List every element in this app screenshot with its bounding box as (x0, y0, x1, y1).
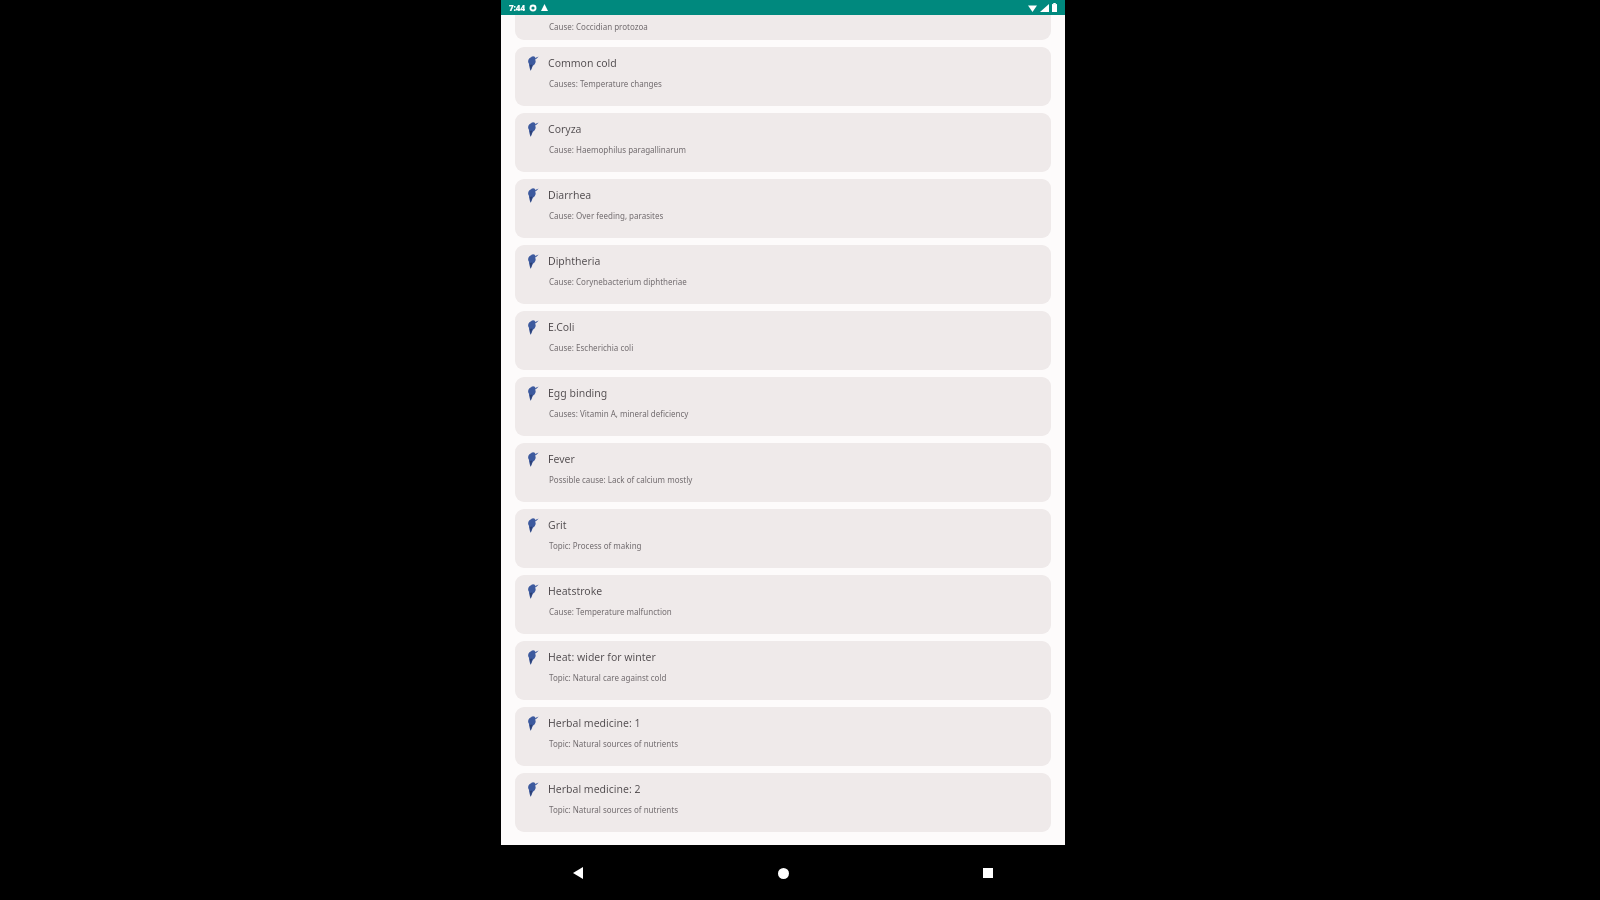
staticText: Causes: Vitamin A, mineral deficiency (549, 408, 689, 419)
staticText: Herbal medicine: 2 (548, 782, 641, 796)
button[interactable]: Bird (515, 575, 1051, 634)
other: Bird (525, 55, 539, 71)
staticText: Cause: Corynebacterium diphtheriae (549, 276, 687, 287)
staticText: Possible cause: Lack of calcium mostly (549, 474, 693, 485)
button[interactable]: Bird (515, 773, 1051, 832)
staticText: Cause: Escherichia coli (549, 342, 634, 353)
button[interactable]: Bird (515, 47, 1051, 106)
staticText: E.Coli (548, 320, 575, 334)
staticText: Cause: Haemophilus paragallinarum (549, 144, 686, 155)
other: Bird (525, 781, 539, 797)
staticText: Topic: Natural care against cold (549, 672, 667, 683)
staticText: Grit (548, 518, 567, 532)
staticText: Topic: Natural sources of nutrients (549, 804, 678, 815)
staticText: Heatstroke (548, 584, 603, 598)
other: Bird (525, 319, 539, 335)
staticText: Cause: Coccidian protozoa (549, 21, 648, 32)
other: Bird (525, 121, 539, 137)
other: Bird (525, 451, 539, 467)
staticText: Causes: Temperature changes (549, 78, 662, 89)
staticText: Coryza (548, 122, 582, 136)
button[interactable]: Bird (515, 113, 1051, 172)
staticText: Egg binding (548, 386, 608, 400)
button[interactable]: Back (561, 856, 595, 890)
button[interactable]: Cause: Coccidian protozoa (515, 15, 1051, 40)
other: Bird (525, 649, 539, 665)
button[interactable]: Bird (515, 245, 1051, 304)
button[interactable]: Bird (515, 179, 1051, 238)
button[interactable]: Bird (515, 443, 1051, 502)
other: Bird (525, 517, 539, 533)
staticText: Topic: Process of making (549, 540, 642, 551)
other: Bird (525, 385, 539, 401)
button[interactable]: Bird (515, 641, 1051, 700)
other: Bird (525, 715, 539, 731)
other: Bird (525, 583, 539, 599)
button[interactable]: Bird (515, 707, 1051, 766)
staticText: Cause: Over feeding, parasites (549, 210, 664, 221)
button[interactable]: Recent apps (971, 856, 1005, 890)
staticText: Cause: Temperature malfunction (549, 606, 672, 617)
staticText: Diarrhea (548, 188, 592, 202)
other: Bird (525, 187, 539, 203)
staticText: Herbal medicine: 1 (548, 716, 641, 730)
staticText: Fever (548, 452, 575, 466)
button[interactable]: Bird (515, 377, 1051, 436)
staticText: Diphtheria (548, 254, 601, 268)
other: Bird (525, 253, 539, 269)
button[interactable]: Bird (515, 509, 1051, 568)
staticText: Topic: Natural sources of nutrients (549, 738, 678, 749)
button[interactable]: Bird (515, 311, 1051, 370)
staticText: Heat: wider for winter (548, 650, 656, 664)
staticText: 7:44 (509, 2, 525, 13)
button[interactable]: Home (766, 856, 800, 890)
staticText: Common cold (548, 56, 617, 70)
